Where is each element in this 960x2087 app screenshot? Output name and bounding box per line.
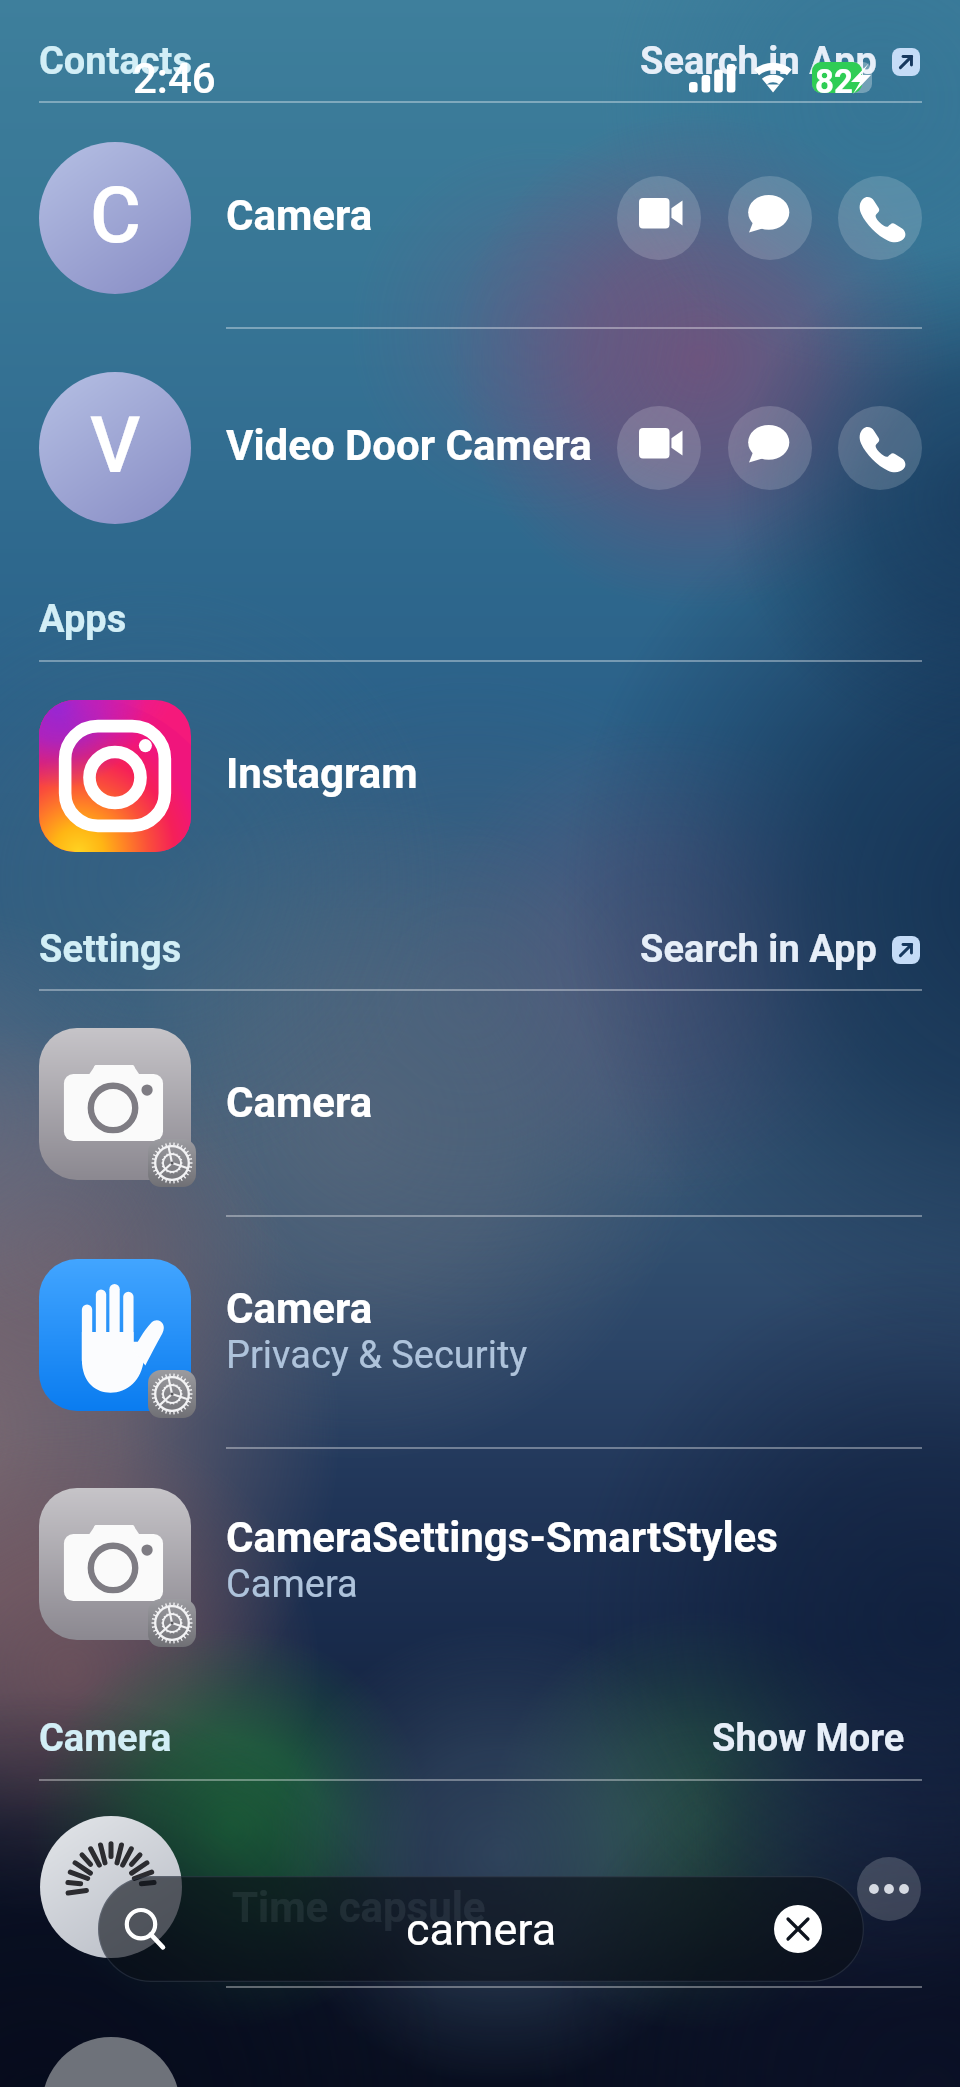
staticText: Show More bbox=[712, 1716, 905, 1761]
staticText: Camera bbox=[226, 1078, 373, 1127]
button[interactable]: Call bbox=[838, 176, 922, 260]
staticText: 2:46 bbox=[133, 54, 216, 103]
staticText: Camera bbox=[39, 1716, 172, 1761]
staticText: Contacts bbox=[39, 39, 192, 84]
staticText: Camera bbox=[226, 1562, 358, 1607]
staticText: Instagram bbox=[226, 749, 418, 798]
staticText: Camera bbox=[226, 1284, 373, 1333]
button[interactable]: Search in App bbox=[640, 927, 920, 972]
button[interactable]: Instagram bbox=[0, 700, 960, 852]
staticText: Apps bbox=[39, 597, 127, 642]
staticText: Privacy & Security bbox=[226, 1333, 528, 1378]
button[interactable] bbox=[42, 2037, 180, 2087]
button[interactable]: Clear text bbox=[774, 1905, 822, 1953]
button[interactable]: Camera bbox=[0, 1028, 960, 1180]
button[interactable]: Search in App bbox=[640, 39, 920, 84]
staticText: Search in App bbox=[640, 927, 877, 972]
button[interactable]: More options bbox=[857, 1857, 921, 1921]
button[interactable]: Message bbox=[728, 406, 812, 490]
staticText: Video Door Camera bbox=[226, 421, 592, 470]
button[interactable]: C bbox=[0, 142, 960, 294]
button[interactable]: Show More bbox=[712, 1716, 920, 1761]
button[interactable]: Camera bbox=[0, 1259, 960, 1411]
button[interactable]: Message bbox=[728, 176, 812, 260]
staticText: V bbox=[90, 400, 141, 491]
staticText: camera bbox=[98, 1903, 864, 1956]
staticText: C bbox=[90, 170, 141, 261]
button[interactable]: Call bbox=[838, 406, 922, 490]
button[interactable] bbox=[40, 1816, 182, 1958]
button[interactable]: Time capsule bbox=[98, 1876, 864, 1982]
button[interactable]: Video call bbox=[617, 406, 701, 490]
staticText: Search in App bbox=[640, 39, 877, 84]
staticText: 82 bbox=[815, 62, 853, 101]
staticText: Settings bbox=[39, 927, 182, 972]
button[interactable]: Video call bbox=[617, 176, 701, 260]
button[interactable]: CameraSettings-SmartStyles bbox=[0, 1488, 960, 1640]
staticText: Time capsule bbox=[232, 1883, 486, 1932]
staticText: Camera bbox=[226, 191, 373, 240]
button[interactable]: V bbox=[0, 372, 960, 524]
staticText: CameraSettings-SmartStyles bbox=[226, 1513, 778, 1562]
